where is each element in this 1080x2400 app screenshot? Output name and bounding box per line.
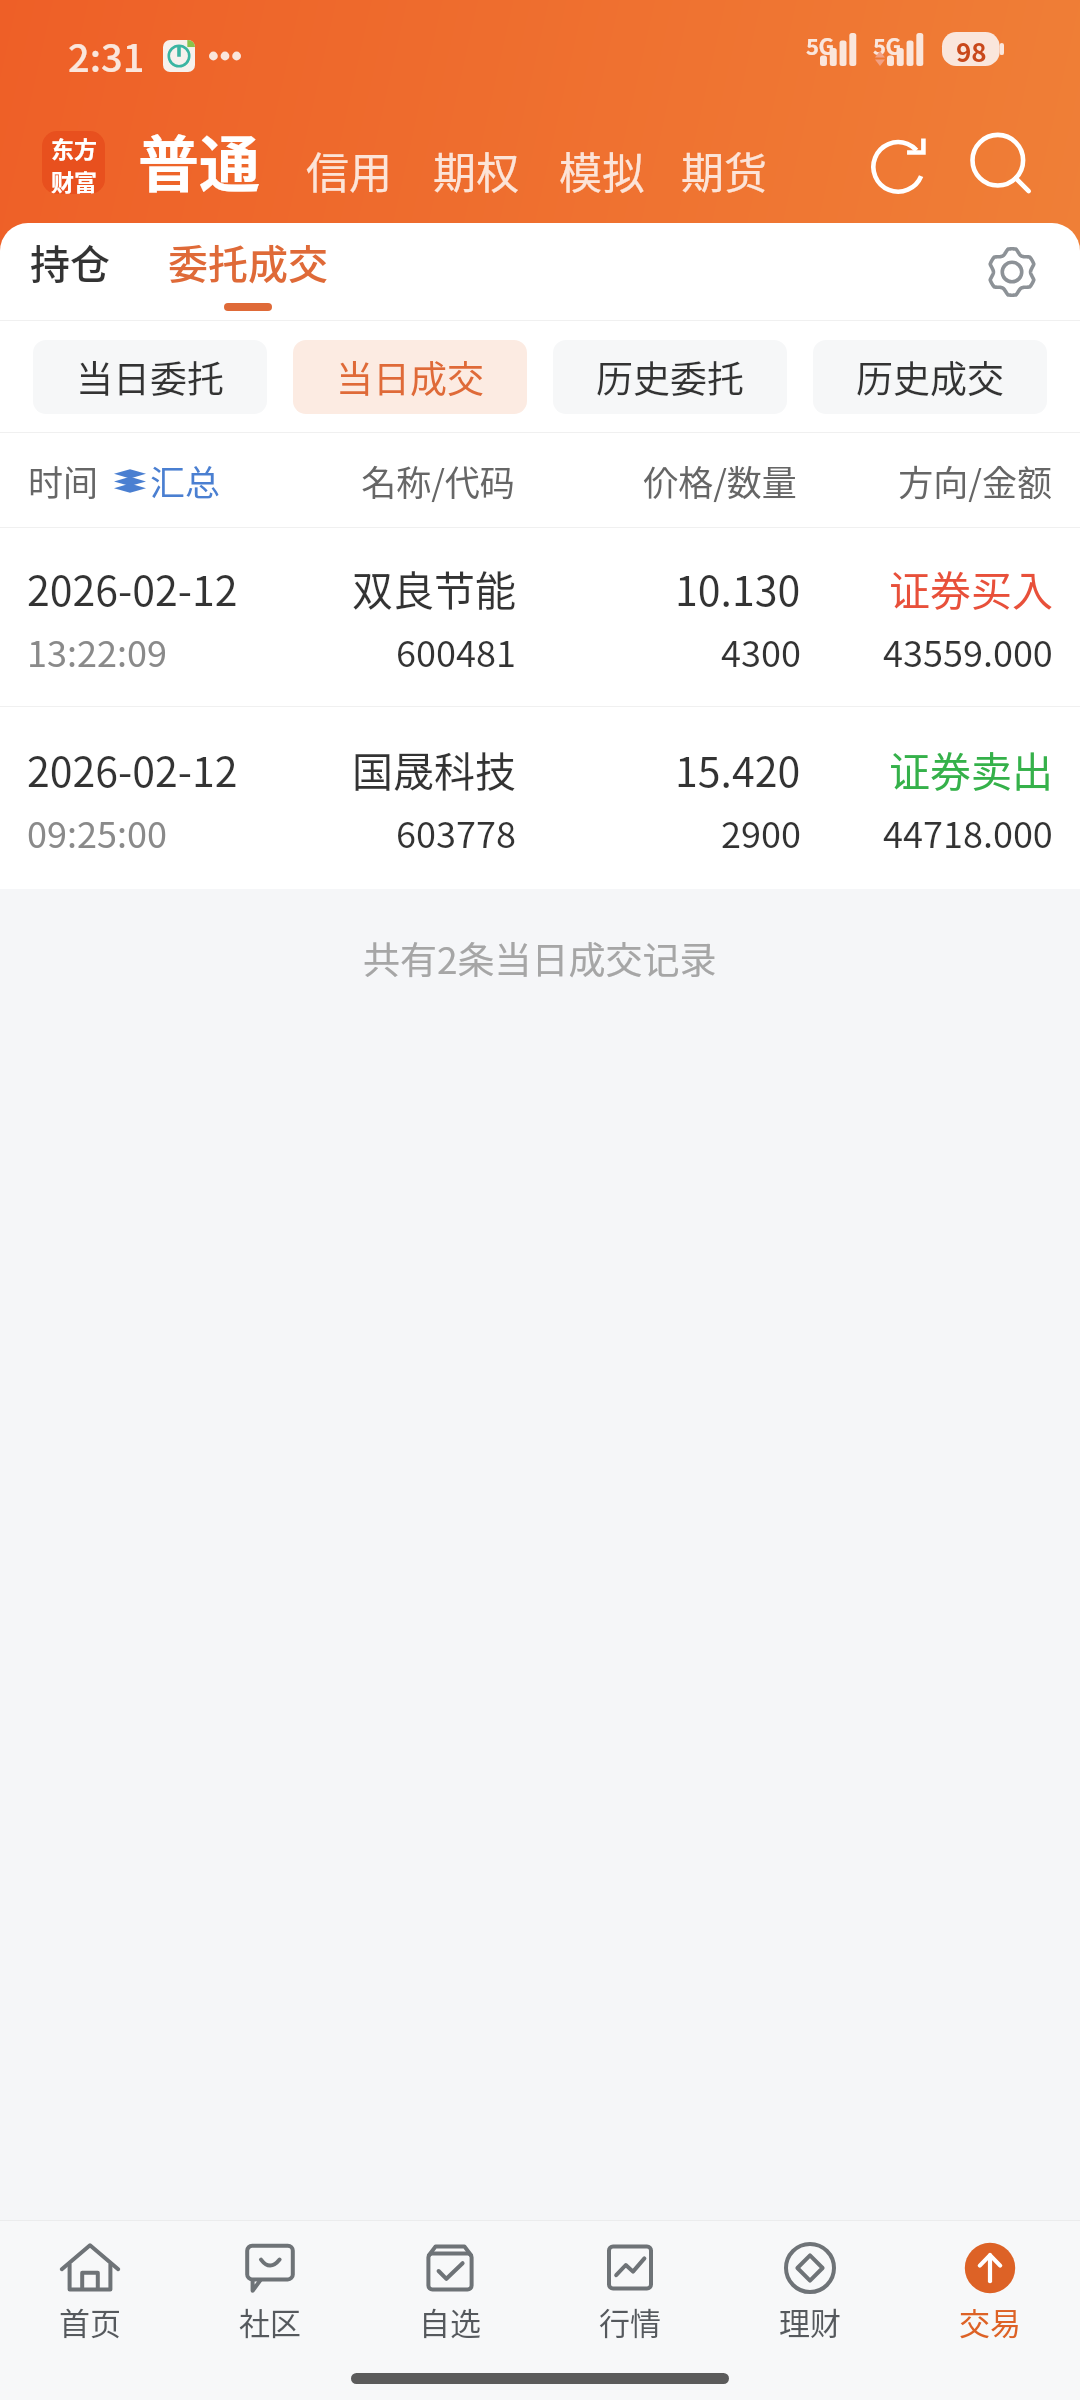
staticText: 自选 <box>419 2299 481 2344</box>
button[interactable]: Settings <box>974 234 1050 310</box>
button[interactable]: 历史成交 <box>813 340 1047 414</box>
staticText: 社区 <box>239 2299 301 2344</box>
staticText: 2:31 <box>68 28 145 83</box>
staticText: 98 <box>956 32 987 66</box>
staticText: 方向/金额 <box>894 455 1052 506</box>
staticText: 2026-02-12 <box>27 739 238 798</box>
button[interactable]: 委托成交 <box>160 229 336 295</box>
button[interactable]: 期货 <box>681 139 767 201</box>
button[interactable]: Refresh <box>860 124 940 204</box>
button[interactable]: 持仓 <box>22 229 118 295</box>
staticText: 2900 <box>721 806 801 858</box>
staticText: 603778 <box>396 806 516 858</box>
staticText: 历史成交 <box>856 350 1004 404</box>
staticText: 43559.000 <box>883 625 1053 677</box>
staticText: 汇总 <box>150 455 221 506</box>
staticText: 13:22:09 <box>27 625 167 677</box>
button[interactable]: 行情 <box>540 2221 720 2348</box>
staticText: 普通 <box>138 116 261 204</box>
button[interactable]: 信用 <box>306 139 392 201</box>
staticText: 行情 <box>599 2299 661 2344</box>
button[interactable]: 期权 <box>433 139 519 201</box>
staticText: 当日委托 <box>76 350 224 404</box>
staticText: 东方 <box>51 131 97 164</box>
button[interactable]: 普通 <box>138 116 261 204</box>
button[interactable]: 交易 <box>900 2221 1080 2348</box>
button[interactable]: 当日委托 <box>33 340 267 414</box>
staticText: 15.420 <box>675 739 801 798</box>
button[interactable]: 2026-02-12 <box>0 528 1080 706</box>
button[interactable]: 历史委托 <box>553 340 787 414</box>
staticText: 理财 <box>779 2299 841 2344</box>
button[interactable]: 模拟 <box>559 139 645 201</box>
staticText: 国晟科技 <box>352 739 516 798</box>
staticText: 双良节能 <box>352 558 516 617</box>
staticText: 44718.000 <box>883 806 1053 858</box>
staticText: 信用 <box>306 139 392 201</box>
staticText: 交易 <box>959 2299 1021 2344</box>
staticText: 600481 <box>396 625 516 677</box>
staticText: 共有2条当日成交记录 <box>363 931 717 985</box>
button[interactable]: 首页 <box>0 2221 180 2348</box>
staticText: 名称/代码 <box>330 455 546 506</box>
button[interactable]: 汇总 <box>114 455 221 506</box>
staticText: 10.130 <box>675 558 801 617</box>
staticText: 时间 <box>28 455 99 506</box>
staticText: 当日成交 <box>336 350 484 404</box>
staticText: 财富 <box>51 164 97 194</box>
button[interactable]: 自选 <box>360 2221 540 2348</box>
staticText: 2026-02-12 <box>27 558 238 617</box>
button[interactable]: 社区 <box>180 2221 360 2348</box>
staticText: 4300 <box>721 625 801 677</box>
staticText: 09:25:00 <box>27 806 167 858</box>
staticText: 价格/数量 <box>546 455 894 506</box>
staticText: 历史委托 <box>596 350 744 404</box>
staticText: 期权 <box>433 139 519 201</box>
staticText: 模拟 <box>559 139 645 201</box>
staticText: 证券买入 <box>889 558 1053 617</box>
staticText: 证券卖出 <box>889 739 1053 798</box>
staticText: 5G <box>873 29 901 61</box>
staticText: 持仓 <box>30 233 110 291</box>
staticText: 5G <box>806 29 834 61</box>
staticText: 委托成交 <box>168 233 328 291</box>
staticText: 首页 <box>59 2299 121 2344</box>
staticText: 期货 <box>681 139 767 201</box>
button[interactable]: 理财 <box>720 2221 900 2348</box>
button[interactable]: 2026-02-12 <box>0 707 1080 889</box>
button[interactable]: Search <box>961 124 1041 204</box>
button[interactable]: 当日成交 <box>293 340 527 414</box>
